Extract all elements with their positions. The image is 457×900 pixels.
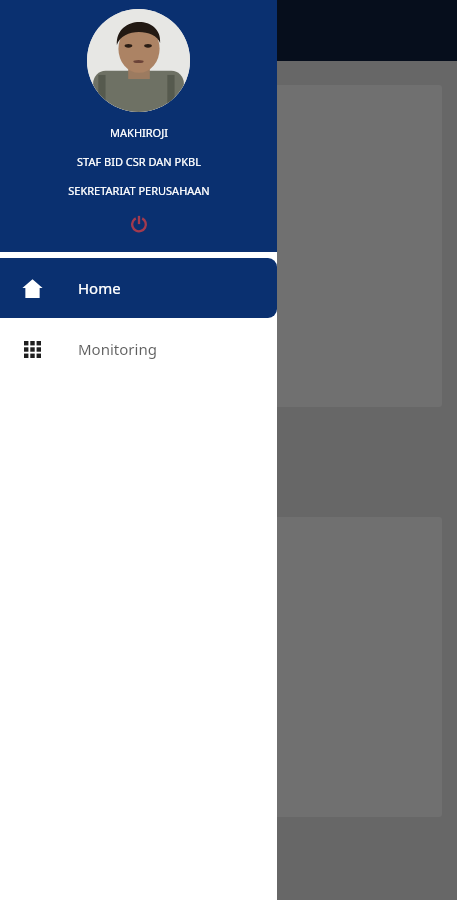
staticText: STAF BID CSR DAN PKBL: [77, 154, 201, 169]
staticText: MAKHIROJI: [110, 125, 168, 140]
staticText: SEKRETARIAT PERUSAHAAN: [68, 183, 210, 198]
button[interactable]: Logout: [122, 206, 156, 240]
button[interactable]: Home: [0, 258, 277, 318]
button[interactable]: Monitoring: [0, 318, 277, 380]
staticText: Home: [78, 278, 121, 298]
staticText: Monitoring: [78, 339, 157, 359]
staticText: MUDIK: [64, 17, 138, 46]
button[interactable]: [15, 517, 442, 817]
button[interactable]: [15, 85, 442, 407]
